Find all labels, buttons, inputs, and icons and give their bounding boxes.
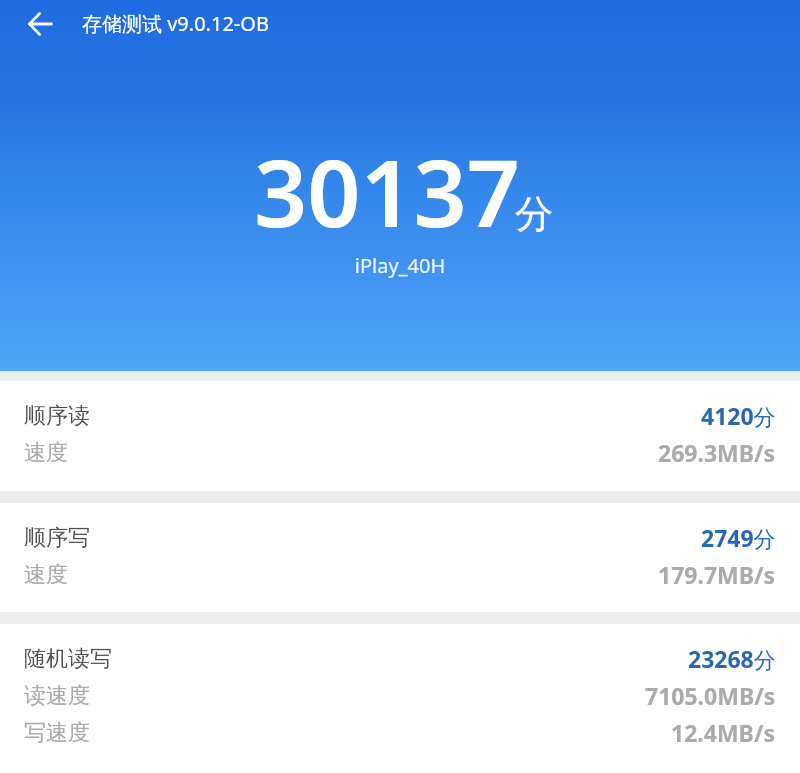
staticText: 30137 [254,128,520,255]
staticText: 随机读写 [24,645,112,673]
staticText: 2749分 [701,522,776,553]
staticText: 23268分 [688,643,776,674]
button[interactable]: 随机读写 [0,624,800,771]
staticText: 269.3MB/s [658,437,776,468]
staticText: 7105.0MB/s [645,680,776,711]
staticText: 4120分 [701,400,776,431]
staticText: 179.7MB/s [658,559,776,590]
button[interactable]: 顺序读 [0,381,800,491]
staticText: 读速度 [24,682,90,710]
staticText: 存储测试 v9.0.12-OB [82,10,269,37]
staticText: 12.4MB/s [671,717,776,748]
staticText: 分 [515,190,553,238]
staticText: 写速度 [24,719,90,747]
button[interactable]: Back [16,0,64,48]
staticText: iPlay_40H [0,252,800,279]
staticText: 速度 [24,439,68,467]
button[interactable]: 顺序写 [0,503,800,612]
staticText: 顺序写 [24,524,90,552]
staticText: 速度 [24,561,68,589]
staticText: 顺序读 [24,402,90,430]
